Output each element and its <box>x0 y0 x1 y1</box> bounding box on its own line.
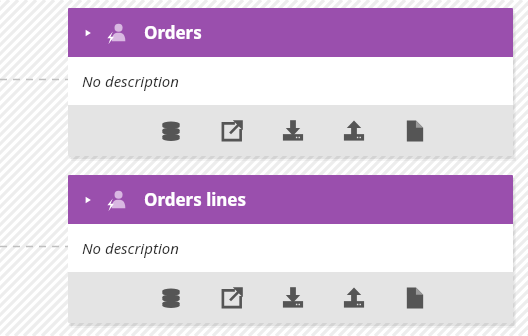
staticText: Orders <box>144 21 202 44</box>
staticText: Orders lines <box>144 188 247 211</box>
button[interactable]: Orders <box>68 8 513 57</box>
button[interactable]: Orders lines <box>68 175 513 224</box>
button[interactable]: No description <box>68 57 513 105</box>
button[interactable]: Export <box>339 116 369 146</box>
button[interactable]: Database <box>156 283 186 313</box>
button[interactable]: Document <box>400 116 430 146</box>
button[interactable]: Document <box>400 283 430 313</box>
button[interactable]: Open in new window <box>217 283 247 313</box>
button[interactable]: No description <box>68 224 513 272</box>
button[interactable]: Import <box>278 283 308 313</box>
staticText: No description <box>82 71 179 91</box>
button[interactable]: Database <box>156 116 186 146</box>
button[interactable]: Import <box>278 116 308 146</box>
button[interactable]: Open in new window <box>217 116 247 146</box>
button[interactable]: Export <box>339 283 369 313</box>
staticText: No description <box>82 238 179 258</box>
